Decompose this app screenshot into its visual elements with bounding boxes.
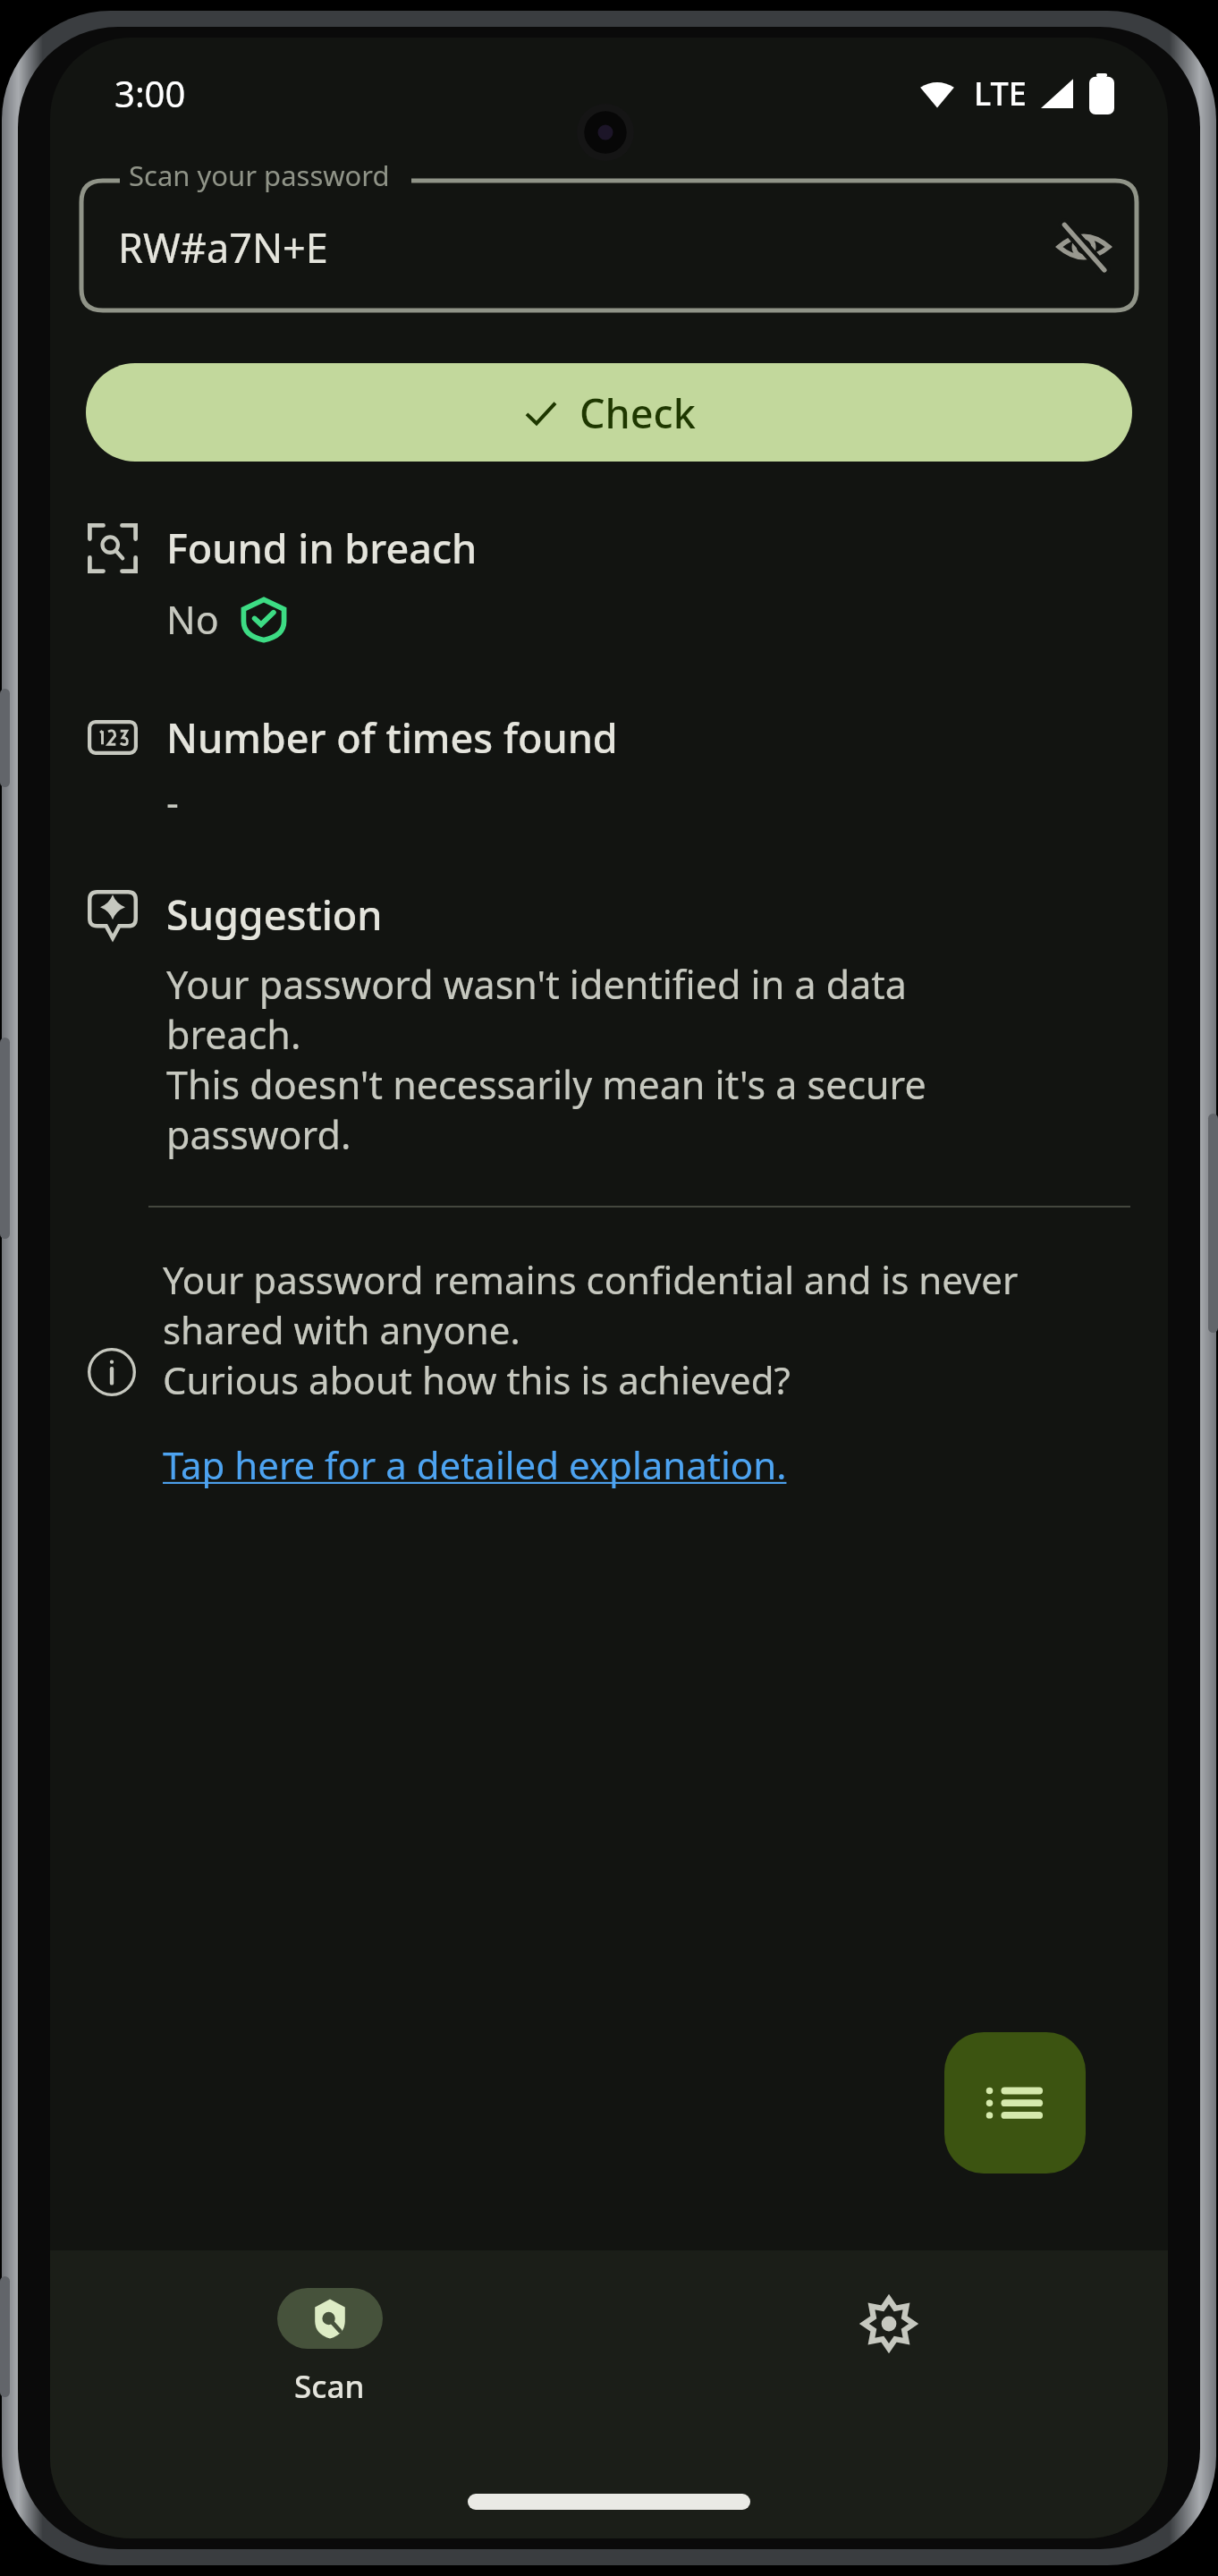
staticText: Tap here for a detailed explanation.: [163, 1439, 787, 1490]
button[interactable]: Scan: [50, 2250, 609, 2458]
button[interactable]: Settings: [609, 2250, 1168, 2458]
staticText: Suggestion: [166, 887, 383, 942]
staticText: Your password remains confidential and i…: [163, 1254, 1019, 1405]
staticText: Found in breach: [166, 521, 478, 575]
staticText: No: [166, 593, 219, 646]
staticText: -: [166, 775, 179, 828]
staticText: Number of times found: [166, 710, 618, 765]
staticText: Scan your password: [129, 157, 390, 194]
button[interactable]: Saved password list: [944, 2032, 1086, 2173]
button[interactable]: Check: [86, 363, 1132, 462]
staticText: Check: [579, 386, 696, 440]
staticText: Your password wasn't identified in a dat…: [166, 958, 926, 1161]
staticText: 3:00: [114, 69, 186, 117]
button[interactable]: Tap here for a detailed explanation.: [163, 1439, 787, 1490]
staticText: RW#a7N+E: [118, 220, 328, 275]
staticText: LTE: [974, 72, 1027, 115]
button[interactable]: Hide password: [1041, 204, 1127, 290]
staticText: Scan: [294, 2365, 365, 2408]
